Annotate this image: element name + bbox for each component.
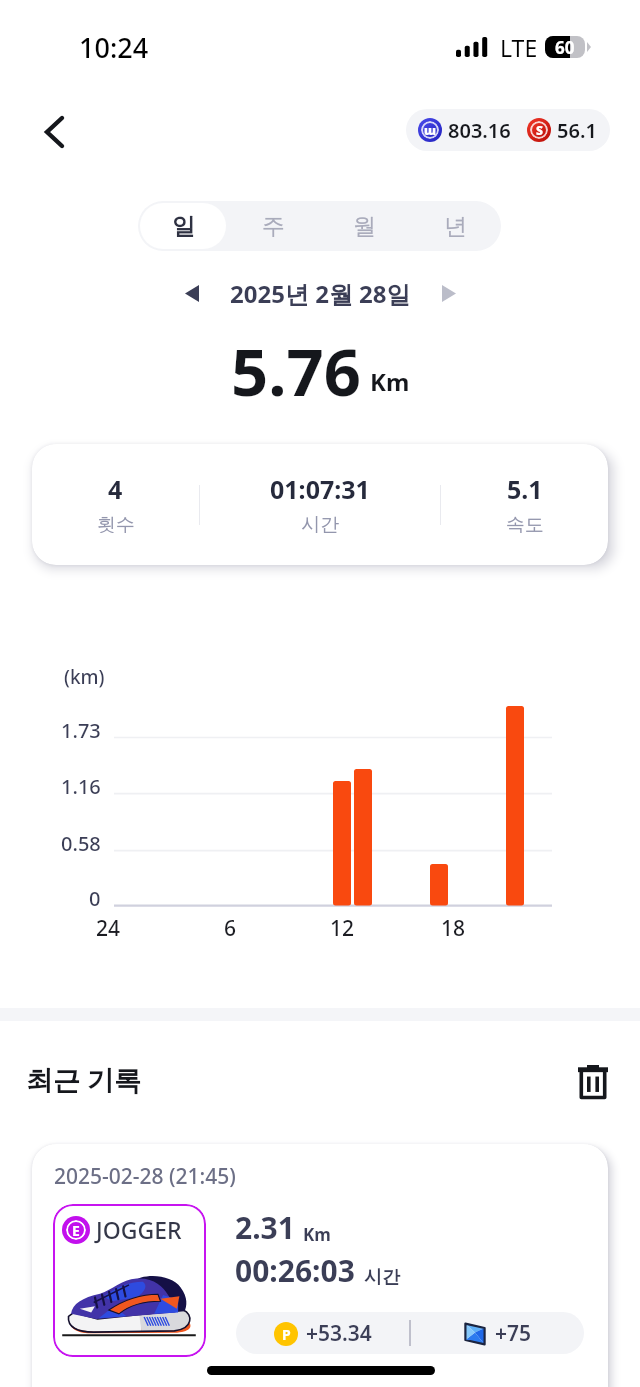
staticText: ɯ (424, 122, 437, 138)
staticText: 속도 (506, 513, 544, 537)
staticText: 1.73 (61, 717, 101, 744)
staticText: 2025-02-28 (21:45) (54, 1162, 236, 1191)
staticText: 0 (89, 885, 101, 912)
staticText: JOGGER (96, 1214, 182, 1245)
staticText: 01:07:31 (270, 472, 370, 506)
staticText: 803.16 (448, 117, 511, 144)
staticText: 시간 (364, 1266, 400, 1289)
button[interactable] (32, 1144, 608, 1387)
button[interactable]: 4 (32, 444, 199, 565)
staticText: 주 (262, 212, 285, 241)
staticText: E (72, 1221, 80, 1240)
button[interactable]: 5.1 (441, 444, 608, 565)
staticText: 5.76 (231, 327, 361, 416)
staticText: 일 (172, 212, 195, 241)
button[interactable]: Previous day (174, 275, 210, 311)
staticText: +53.34 (306, 1319, 372, 1348)
button[interactable]: 월 (321, 203, 408, 249)
staticText: 6 (224, 914, 237, 943)
staticText: LTE (500, 32, 538, 63)
staticText: 최근 기록 (26, 1061, 142, 1098)
staticText: 2025년 2월 28일 (230, 277, 411, 310)
staticText: 12 (330, 914, 355, 943)
button[interactable]: Delete records (567, 1056, 619, 1108)
button[interactable]: 일 (140, 203, 226, 249)
staticText: 56.1 (557, 117, 597, 144)
staticText: 10:24 (79, 29, 149, 66)
staticText: P (282, 1325, 291, 1344)
staticText: (km) (64, 664, 105, 690)
button[interactable]: 년 (412, 203, 499, 249)
staticText: 5.1 (507, 472, 543, 506)
button[interactable]: Next day (431, 275, 467, 311)
button[interactable]: 주 (230, 203, 317, 249)
staticText: 4 (108, 472, 123, 506)
staticText: 00:26:03 (235, 1250, 355, 1291)
button[interactable]: P (236, 1312, 584, 1354)
staticText: 횟수 (97, 513, 135, 537)
staticText: 24 (96, 914, 121, 943)
button[interactable]: 01:07:31 (200, 444, 440, 565)
staticText: Km (370, 365, 410, 398)
button[interactable]: ɯ (406, 109, 610, 151)
staticText: S (536, 122, 543, 138)
staticText: 2.31 (235, 1207, 295, 1248)
staticText: 시간 (301, 513, 339, 537)
staticText: 60 (555, 36, 575, 58)
staticText: 1.16 (61, 773, 101, 800)
staticText: 18 (441, 914, 466, 943)
staticText: Km (303, 1223, 331, 1246)
staticText: 0.58 (61, 830, 101, 857)
staticText: 월 (353, 212, 376, 241)
button[interactable]: Back (28, 106, 80, 158)
staticText: +75 (495, 1319, 532, 1348)
staticText: 년 (444, 212, 467, 241)
